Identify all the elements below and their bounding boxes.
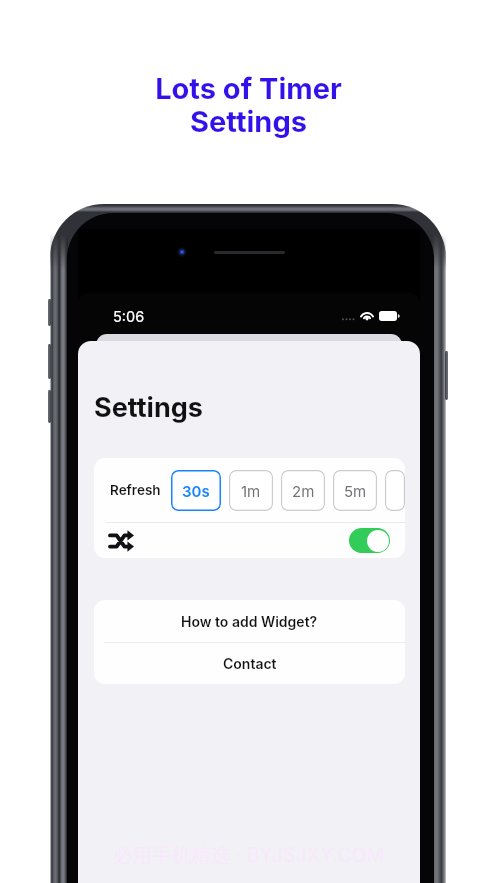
staticText: 5m [344, 482, 367, 500]
button[interactable]: 5m [333, 470, 377, 511]
staticText: 1m [241, 482, 261, 500]
button[interactable]: Shuffle toggle [349, 528, 390, 553]
staticText: 2m [292, 482, 315, 500]
staticText: 30s [182, 482, 210, 500]
staticText: How to add Widget? [181, 613, 318, 630]
staticText: Settings [94, 391, 203, 424]
button[interactable] [385, 470, 405, 511]
button[interactable]: How to add Widget? [94, 600, 405, 642]
button[interactable]: Contact [94, 643, 405, 684]
button[interactable]: 30s [171, 470, 221, 511]
staticText: Refresh [110, 482, 161, 498]
button[interactable]: 2m [281, 470, 325, 511]
button[interactable]: 1m [229, 470, 273, 511]
button[interactable]: Shuffle [110, 530, 134, 552]
staticText: Contact [223, 655, 277, 672]
staticText: 必用手机精选 · BYJSJXY.COM [0, 843, 497, 868]
staticText: Lots of Timer Settings [0, 71, 497, 139]
staticText: 5:06 [113, 308, 145, 326]
